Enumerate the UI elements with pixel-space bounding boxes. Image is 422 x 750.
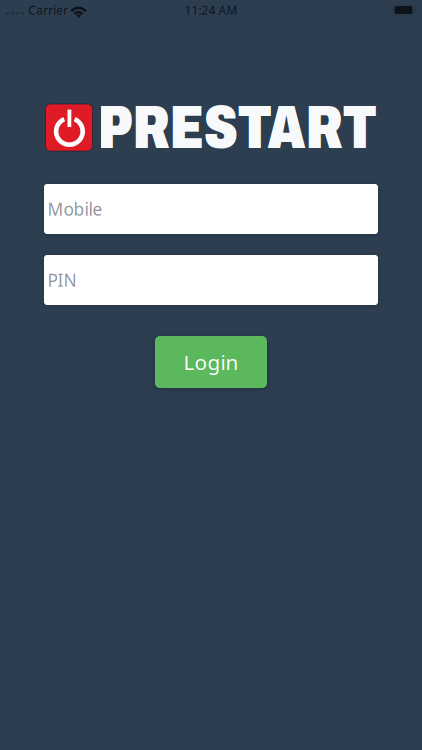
staticText: Mobile [47, 197, 102, 221]
button[interactable]: Mobile [44, 184, 378, 234]
staticText: PIN [47, 268, 76, 292]
button[interactable]: Login [155, 336, 267, 388]
button[interactable]: PIN [44, 255, 378, 305]
staticText: Carrier [28, 2, 68, 18]
staticText: PRESTART [97, 94, 377, 161]
staticText: Login [183, 348, 238, 376]
staticText: 11:24 AM [184, 2, 237, 18]
